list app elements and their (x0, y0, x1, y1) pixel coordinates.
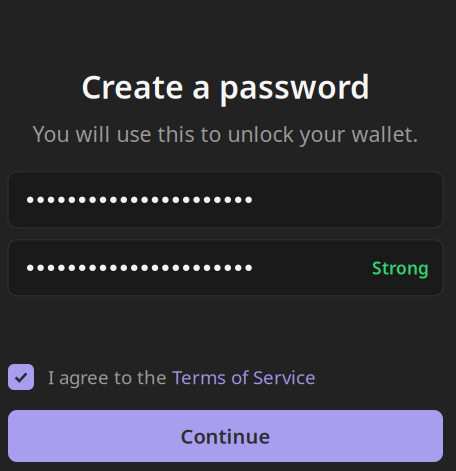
staticText: You will use this to unlock your wallet. (32, 119, 418, 148)
button[interactable]: I agree to the Terms of Service (8, 364, 34, 390)
staticText: Create a password (81, 65, 370, 107)
button[interactable]: Continue (8, 410, 443, 462)
staticText: Terms of Service (172, 365, 316, 389)
button[interactable]: Password (8, 172, 443, 228)
staticText: Strong (372, 256, 429, 279)
button[interactable]: Terms of Service (172, 365, 316, 389)
staticText: I agree to the (48, 365, 172, 389)
staticText: Continue (180, 423, 270, 449)
button[interactable]: Confirm password, Strong (8, 240, 443, 296)
